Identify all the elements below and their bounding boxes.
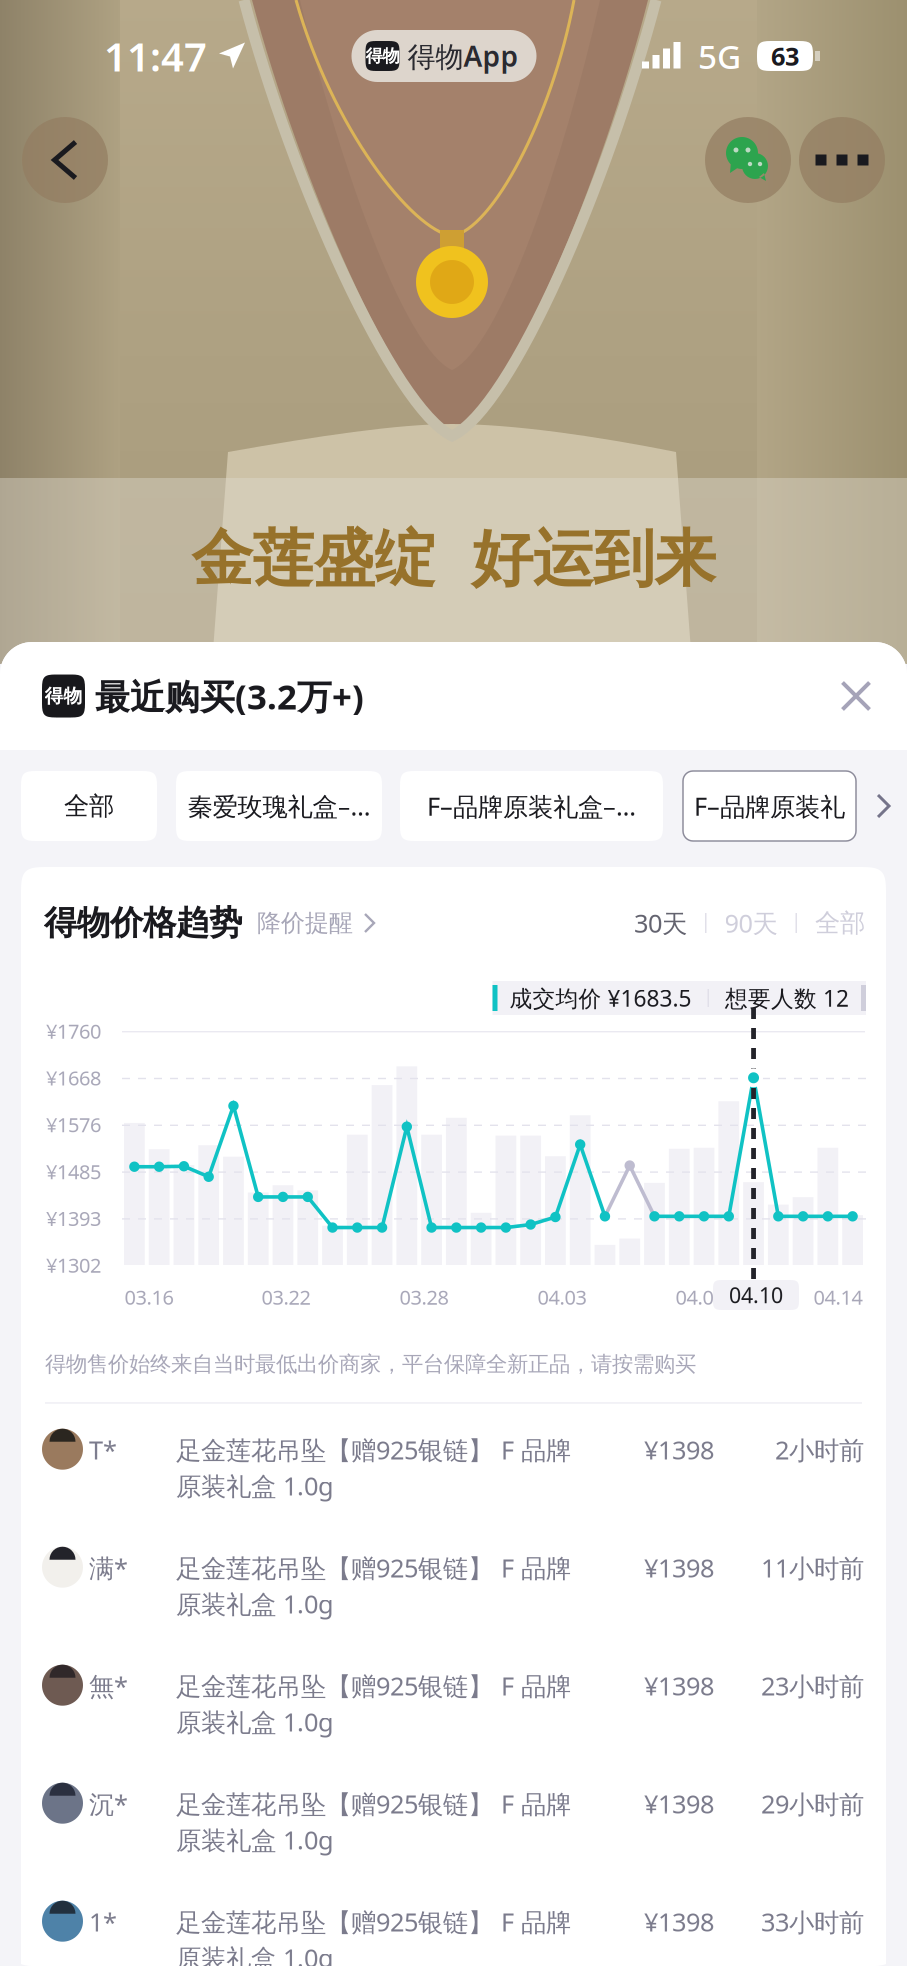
button[interactable]: 90天 [724, 906, 777, 940]
staticText: F–品牌原装礼盒–… [427, 789, 636, 823]
staticText: ¥1398 [644, 1787, 714, 1820]
staticText: ¥1760 [46, 1018, 101, 1044]
button[interactable]: 沉* [21, 1758, 886, 1876]
staticText: 降价提醒 [257, 908, 353, 938]
staticText: 足金莲花吊坠【赠925银链】 F 品牌 [176, 1433, 571, 1466]
staticText: ¥1398 [644, 1669, 714, 1702]
staticText: 1* [89, 1905, 117, 1938]
button[interactable]: Share to WeChat [705, 117, 791, 203]
staticText: 得物 [365, 45, 399, 67]
button[interactable]: 30天 [634, 906, 687, 940]
button[interactable]: 全部 [815, 907, 865, 938]
staticText: 全部 [64, 790, 114, 821]
staticText: 04.03 [537, 1284, 586, 1310]
staticText: 29小时前 [761, 1787, 864, 1820]
staticText: 03.16 [124, 1284, 173, 1310]
staticText: 無* [89, 1669, 128, 1702]
button[interactable]: F–品牌原装礼 [683, 771, 856, 841]
staticText: 全部 [815, 907, 865, 938]
staticText: ¥1398 [644, 1905, 714, 1938]
staticText: 03.28 [399, 1284, 448, 1310]
staticText: 2小时前 [775, 1433, 864, 1466]
staticText: 原装礼盒 1.0g [176, 1587, 334, 1620]
staticText: 63 [771, 39, 799, 73]
staticText: 33小时前 [761, 1905, 864, 1938]
button[interactable]: Back [22, 117, 108, 203]
staticText: 04.10 [729, 1281, 783, 1309]
button[interactable]: 秦爱玫瑰礼盒–… [176, 771, 382, 841]
staticText: F–品牌原装礼 [694, 789, 845, 823]
staticText: 11:47 [104, 29, 207, 82]
staticText: 原装礼盒 1.0g [176, 1823, 334, 1856]
staticText: 23小时前 [761, 1669, 864, 1702]
staticText: ¥1398 [644, 1551, 714, 1584]
staticText: 想要人数 12 [725, 983, 849, 1013]
staticText: ¥1485 [46, 1158, 101, 1185]
staticText: ¥1302 [46, 1252, 101, 1278]
staticText: ¥1393 [46, 1205, 101, 1231]
staticText: 5G [698, 34, 741, 78]
staticText: 03.22 [261, 1284, 310, 1310]
staticText: 30天 [634, 906, 687, 940]
staticText: 原装礼盒 1.0g [176, 1705, 334, 1738]
staticText: 足金莲花吊坠【赠925银链】 F 品牌 [176, 1551, 571, 1584]
staticText: 沉* [89, 1787, 128, 1820]
staticText: 原装礼盒 1.0g [176, 1941, 334, 1966]
staticText: ¥1576 [46, 1111, 101, 1138]
staticText: ¥1668 [46, 1064, 101, 1091]
staticText: 04.09 [675, 1284, 724, 1310]
staticText: 成交均价 ¥1683.5 [509, 983, 691, 1013]
staticText: ¥1398 [644, 1433, 714, 1466]
button[interactable]: 全部 [21, 771, 157, 841]
button[interactable]: 無* [21, 1640, 886, 1758]
staticText: 原装礼盒 1.0g [176, 1469, 334, 1502]
button[interactable]: T* [21, 1404, 886, 1522]
staticText: 11小时前 [761, 1551, 864, 1584]
staticText: 得物价格趋势 [44, 902, 242, 943]
button[interactable]: Close [820, 660, 892, 732]
staticText: 04.14 [813, 1284, 862, 1310]
staticText: T* [89, 1433, 117, 1466]
staticText: 满* [89, 1551, 128, 1584]
button[interactable]: 降价提醒 [242, 908, 376, 938]
button[interactable]: 1* [21, 1876, 886, 1966]
staticText: 足金莲花吊坠【赠925银链】 F 品牌 [176, 1787, 571, 1820]
button[interactable]: More [799, 117, 885, 203]
staticText: 足金莲花吊坠【赠925银链】 F 品牌 [176, 1669, 571, 1702]
staticText: 90天 [724, 906, 777, 940]
staticText: 秦爱玫瑰礼盒–… [187, 789, 370, 823]
staticText: 金莲盛绽 好运到来 [191, 521, 715, 597]
staticText: 得物App [407, 37, 518, 75]
staticText: 最近购买(3.2万+) [95, 673, 364, 719]
button[interactable]: F–品牌原装礼盒–… [400, 771, 663, 841]
staticText: 得物售价始终来自当时最低出价商家，平台保障全新正品，请按需购买 [45, 1351, 696, 1377]
button[interactable]: 满* [21, 1522, 886, 1640]
staticText: 得物 [44, 684, 82, 707]
staticText: 足金莲花吊坠【赠925银链】 F 品牌 [176, 1905, 571, 1938]
